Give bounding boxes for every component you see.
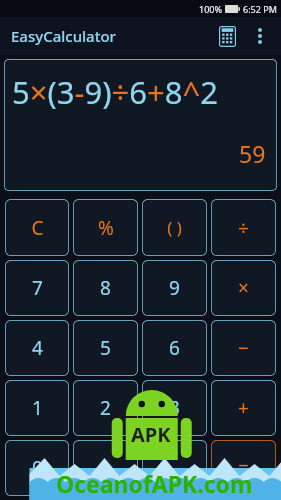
button[interactable]: C <box>5 199 69 256</box>
button[interactable]: ( ) <box>142 199 207 256</box>
button[interactable]: Calculator <box>209 18 245 54</box>
staticText: 100% <box>199 3 222 15</box>
staticText: 8 <box>100 275 111 301</box>
button[interactable]: + <box>211 380 276 436</box>
button[interactable]: = <box>211 440 276 496</box>
staticText: ÷ <box>238 215 249 241</box>
button[interactable]: 7 <box>5 260 69 316</box>
staticText: = <box>238 455 249 481</box>
staticText: 5×(3-9)÷6+8^2 <box>12 71 218 113</box>
staticText: 3 <box>169 395 180 421</box>
staticText: 5 <box>100 335 111 361</box>
staticText: 7 <box>32 275 43 301</box>
staticText: − <box>238 335 249 361</box>
button[interactable]: − <box>211 320 276 376</box>
staticText: 0 <box>32 455 43 481</box>
button[interactable]: × <box>211 260 276 316</box>
staticText: C <box>31 215 44 241</box>
button[interactable]: 9 <box>142 260 207 316</box>
button[interactable]: 2 <box>73 380 138 436</box>
staticText: + <box>238 395 249 421</box>
button[interactable]: . <box>73 440 138 496</box>
staticText: ( ) <box>167 216 182 239</box>
button[interactable]: 6 <box>142 320 207 376</box>
button[interactable]: 0 <box>5 440 69 496</box>
staticText: 4 <box>32 335 43 361</box>
staticText: 6:52 PM <box>243 3 277 15</box>
staticText: EasyCalculator <box>11 26 116 46</box>
button[interactable]: 1 <box>5 380 69 436</box>
button[interactable]: % <box>73 199 138 256</box>
button[interactable]: 3 <box>142 380 207 436</box>
staticText: 1 <box>32 395 43 421</box>
staticText: 2 <box>100 395 111 421</box>
staticText: % <box>98 215 114 241</box>
staticText: 6 <box>169 335 180 361</box>
staticText: APK <box>131 421 171 448</box>
button[interactable]: 5 <box>73 320 138 376</box>
button[interactable]: 8 <box>73 260 138 316</box>
staticText: 9 <box>169 275 180 301</box>
button[interactable]: 4 <box>5 320 69 376</box>
staticText: . <box>103 455 109 481</box>
staticText: 59 <box>239 138 266 169</box>
button[interactable]: ÷ <box>211 199 276 256</box>
button[interactable] <box>142 440 207 496</box>
staticText: OceanofAPK.com <box>56 468 253 499</box>
button[interactable]: More options <box>245 21 275 51</box>
staticText: × <box>238 275 249 301</box>
